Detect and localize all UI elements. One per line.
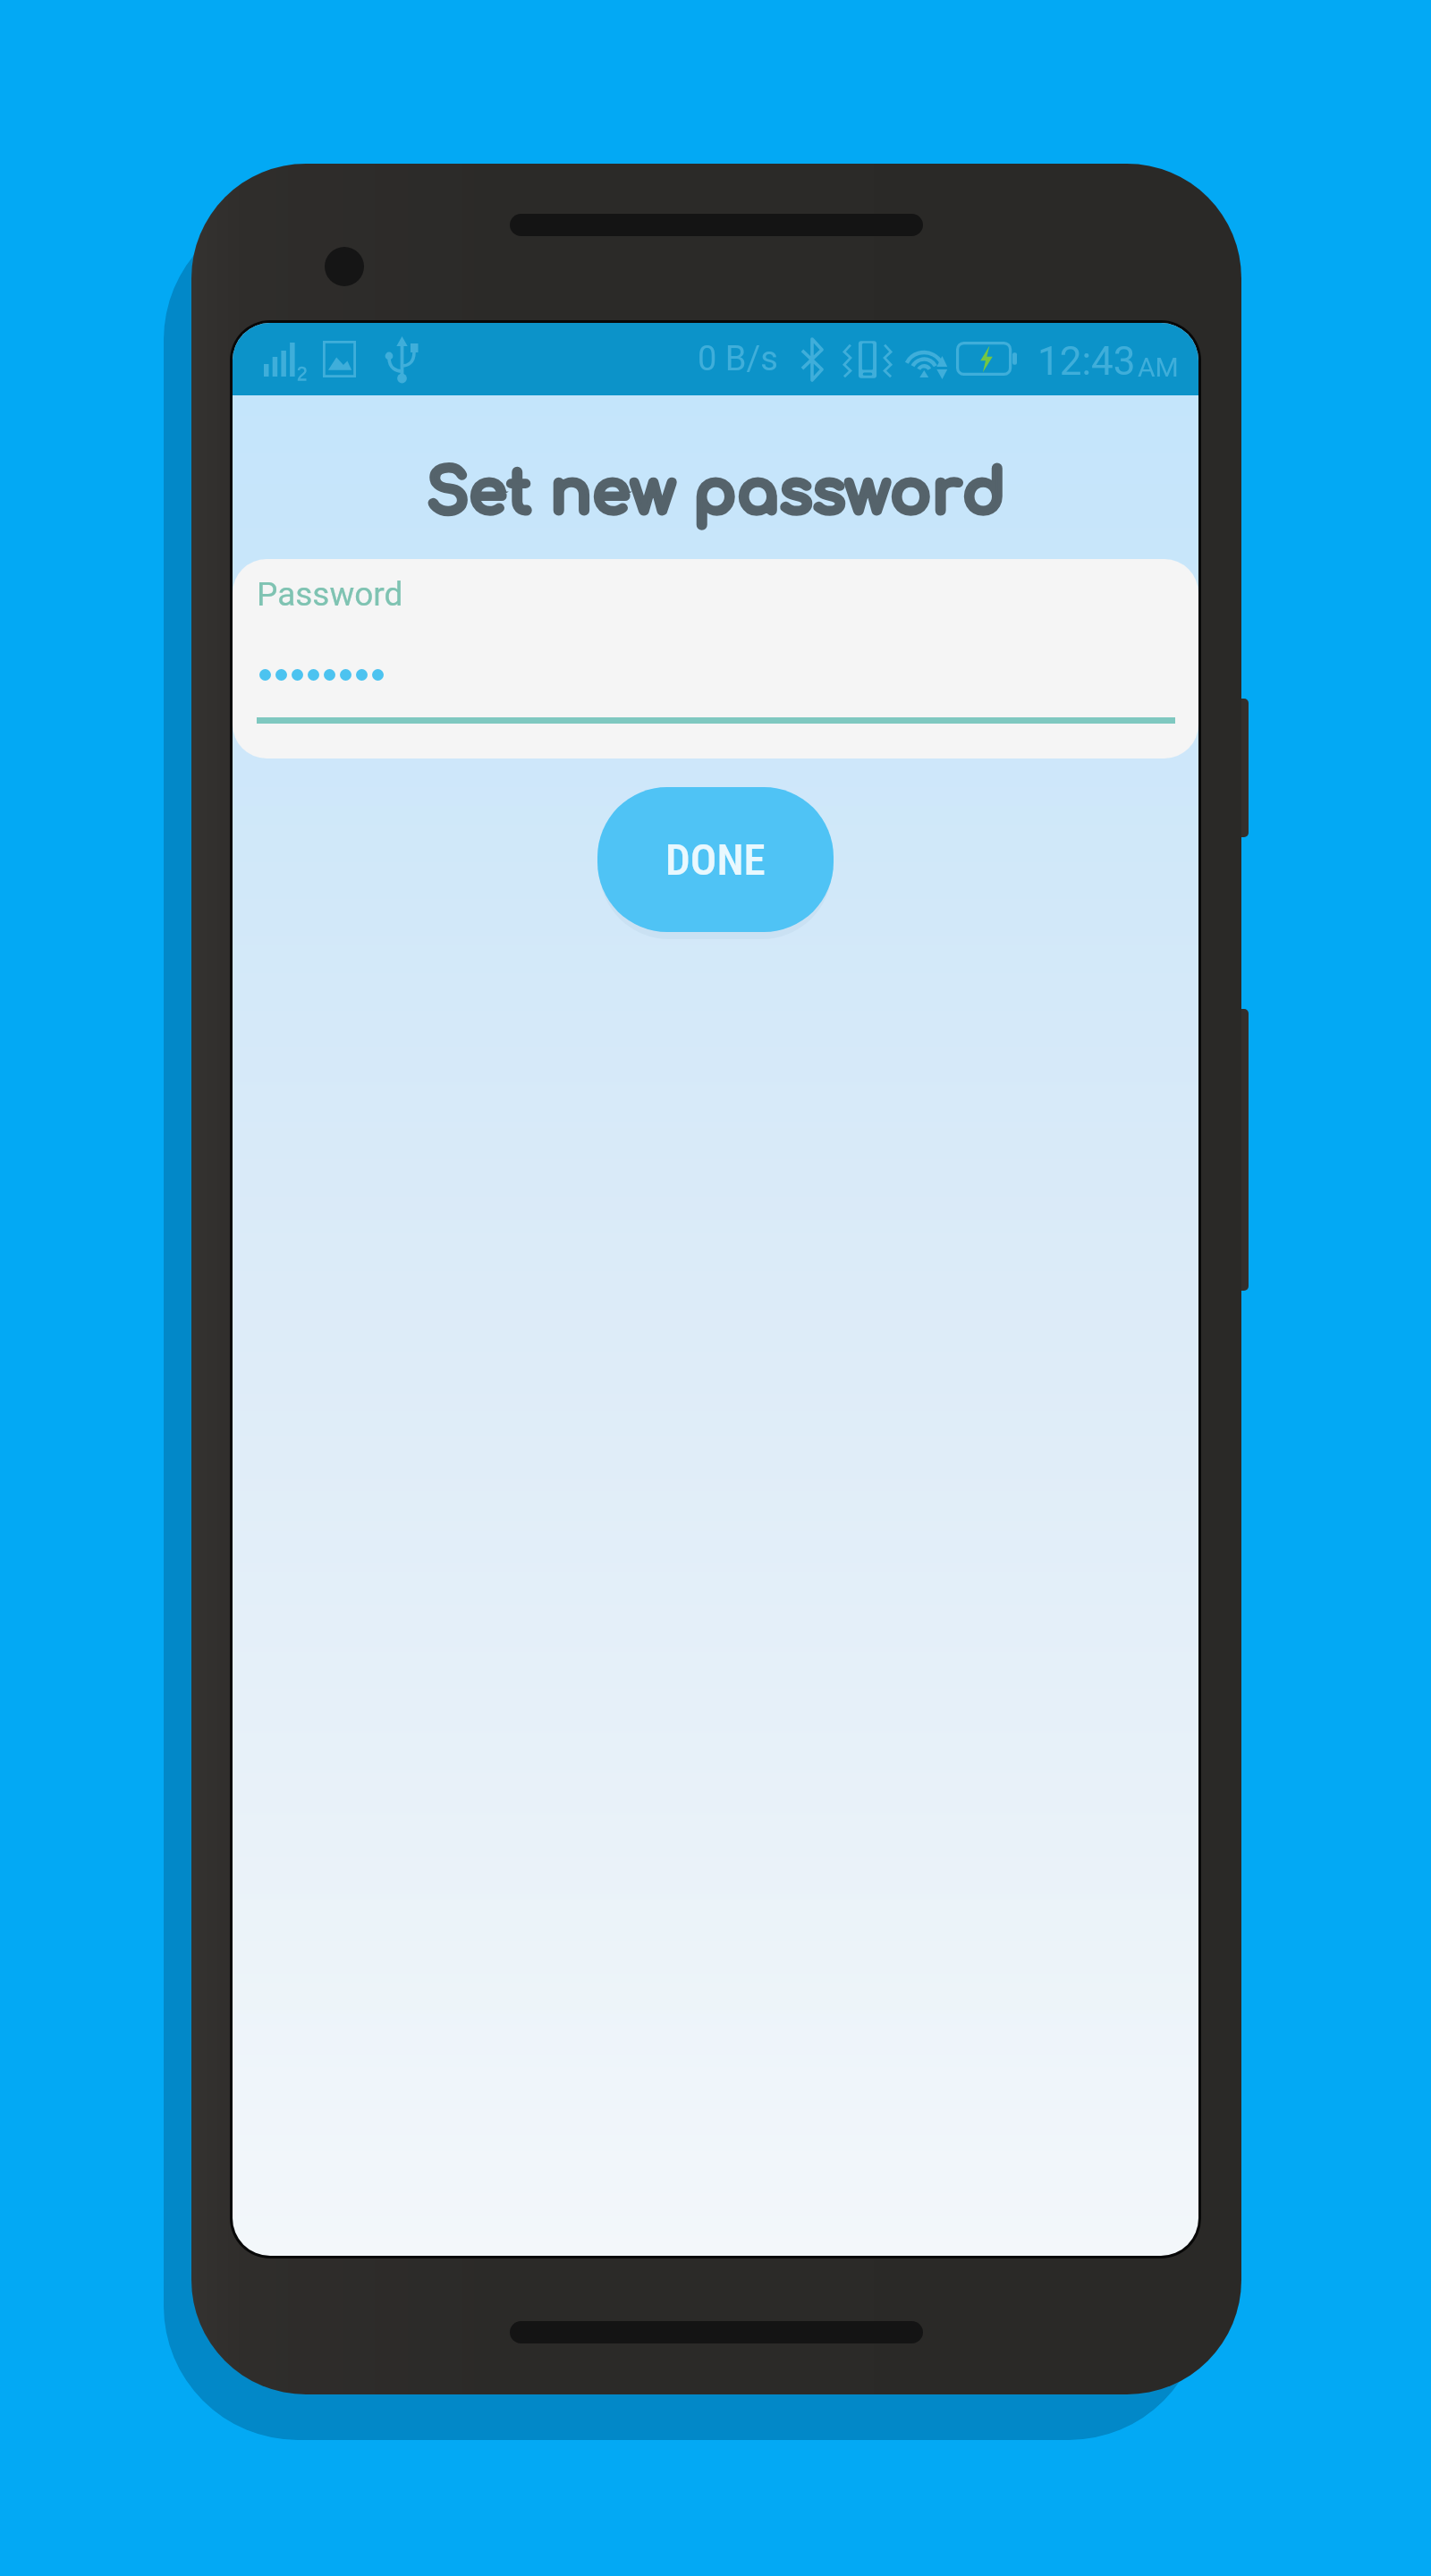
button[interactable]: Password xyxy=(233,559,1198,758)
button[interactable]: DONE xyxy=(597,787,834,932)
staticText: AM xyxy=(1138,352,1179,383)
staticText: 12:43 xyxy=(1037,338,1136,385)
staticText: 0 B/s xyxy=(698,339,778,379)
staticText: DONE xyxy=(665,835,766,885)
staticText: Password xyxy=(257,575,403,614)
